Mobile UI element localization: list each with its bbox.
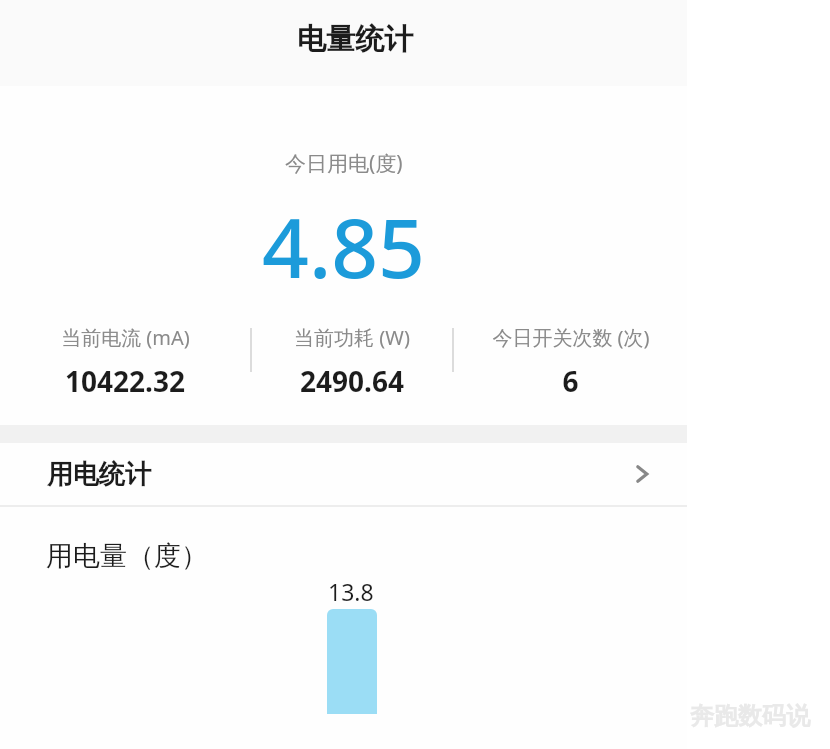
staticText: 10422.32: [65, 362, 185, 400]
staticText: 6: [562, 362, 579, 400]
button[interactable]: 当前功耗 (W): [252, 324, 452, 400]
staticText: 电量统计: [297, 21, 413, 58]
staticText: 当前功耗 (W): [294, 324, 410, 351]
staticText: 用电统计: [47, 458, 151, 491]
other: 用电统计详情: [627, 459, 657, 489]
staticText: 今日开关次数 (次): [492, 324, 650, 351]
staticText: 当前电流 (mA): [61, 324, 190, 351]
button[interactable]: 当前电流 (mA): [0, 324, 250, 400]
staticText: 4.85: [262, 190, 426, 302]
button[interactable]: 用电统计: [0, 443, 687, 505]
staticText: 2490.64: [300, 362, 404, 400]
button[interactable]: 今日开关次数 (次): [454, 324, 687, 400]
staticText: 用电量（度）: [46, 539, 208, 573]
staticText: 今日用电(度): [285, 149, 403, 178]
staticText: 13.8: [328, 576, 374, 607]
staticText: 奔跑数码说: [690, 701, 810, 731]
